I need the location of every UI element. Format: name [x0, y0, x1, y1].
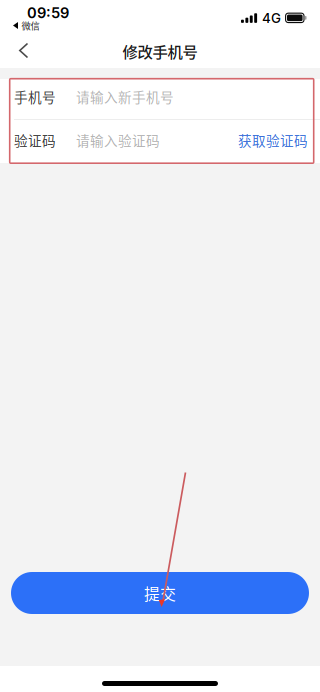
staticText: 验证码: [14, 130, 56, 150]
staticText: 提交: [144, 581, 176, 605]
button[interactable]: 提交: [11, 572, 309, 614]
staticText: 微信: [21, 19, 39, 32]
staticText: 手机号: [14, 87, 56, 106]
button[interactable]: Back: [7, 34, 41, 67]
staticText: 请输入新手机号: [76, 87, 174, 106]
button[interactable]: 获取验证码: [238, 130, 308, 150]
staticText: 09:59: [27, 4, 69, 22]
staticText: 4G: [262, 10, 281, 26]
staticText: 获取验证码: [238, 130, 308, 150]
staticText: 修改手机号: [122, 40, 197, 62]
staticText: 请输入验证码: [76, 130, 160, 150]
